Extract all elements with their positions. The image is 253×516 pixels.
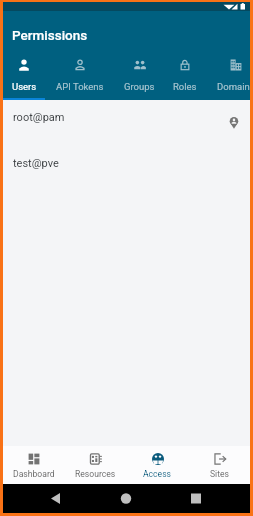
staticText: Users <box>12 81 37 92</box>
button[interactable]: API Tokens <box>45 54 114 100</box>
button[interactable]: test@pve <box>3 146 250 192</box>
staticText: Groups <box>124 81 155 92</box>
button[interactable]: Groups <box>114 54 165 100</box>
staticText: Permissions <box>12 27 88 43</box>
staticText: Domains <box>217 81 250 92</box>
staticText: Access <box>143 469 172 479</box>
other: User realm <box>228 116 241 129</box>
staticText: test@pve <box>13 157 59 170</box>
staticText: API Tokens <box>56 81 104 92</box>
button[interactable]: Dashboard <box>3 446 64 484</box>
staticText: Dashboard <box>13 469 55 479</box>
button[interactable]: Access <box>126 446 188 484</box>
button[interactable]: Users <box>3 54 45 100</box>
button[interactable]: Resources <box>64 446 126 484</box>
button[interactable]: Domains <box>205 54 250 100</box>
staticText: Sites <box>210 469 229 479</box>
staticText: Roles <box>173 81 197 92</box>
button[interactable]: Roles <box>165 54 205 100</box>
staticText: root@pam <box>13 111 65 124</box>
staticText: Resources <box>75 469 116 479</box>
button[interactable]: root@pam <box>3 100 250 146</box>
button[interactable]: Sites <box>188 446 250 484</box>
